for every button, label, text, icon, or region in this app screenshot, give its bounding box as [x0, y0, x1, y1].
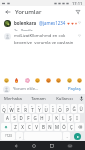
button[interactable]: Paylaş — [67, 85, 82, 93]
button[interactable]: 4 — [22, 104, 28, 113]
button[interactable]: Ü — [78, 104, 84, 113]
button[interactable]: Beğen — [77, 20, 82, 25]
staticText: P — [66, 107, 69, 113]
button[interactable]: I — [74, 114, 80, 122]
staticText: Tamam — [31, 96, 46, 102]
button[interactable]: M — [54, 123, 60, 131]
button[interactable]: V — [33, 123, 39, 131]
button[interactable]: Ğ — [71, 104, 77, 113]
button[interactable]: 1 — [1, 104, 7, 113]
button[interactable]: L — [60, 114, 66, 122]
staticText: U — [44, 107, 48, 113]
button[interactable]: mdLizatKlbmohmd en cok — [0, 31, 85, 44]
button[interactable]: Son uygulamalar — [47, 141, 56, 150]
button[interactable]: Beğen — [77, 33, 82, 38]
staticText: A — [6, 115, 9, 121]
button[interactable]: Emoji 4 — [34, 77, 40, 83]
button[interactable]: Emoji 6 — [55, 77, 61, 83]
button[interactable]: Ş — [67, 114, 73, 122]
staticText: Yorum ekle... — [13, 86, 39, 92]
staticText: I — [52, 107, 54, 113]
staticText: N — [48, 124, 52, 130]
button[interactable]: Geri — [3, 7, 12, 16]
staticText: 1 — [3, 104, 5, 107]
button[interactable]: Sil — [75, 123, 84, 131]
button[interactable]: B — [40, 123, 46, 131]
button[interactable]: Filtrele — [73, 7, 82, 16]
staticText: M — [55, 124, 59, 130]
button[interactable]: Ana ekran — [29, 141, 38, 150]
staticText: bolenkara — [14, 20, 37, 26]
button[interactable]: G — [32, 114, 38, 122]
button[interactable]: Z — [12, 123, 18, 131]
staticText: G — [33, 115, 37, 121]
button[interactable]: Yorum ekle... — [13, 86, 65, 92]
staticText: 6 — [38, 104, 40, 107]
button[interactable]: Emoji 1 — [3, 77, 9, 83]
button[interactable]: H — [39, 114, 45, 122]
staticText: V — [35, 124, 38, 130]
button[interactable]: F — [25, 114, 31, 122]
button[interactable]: S — [11, 114, 17, 122]
staticText: O — [58, 107, 62, 113]
button[interactable]: Kullanıcı — [51, 94, 77, 103]
staticText: L — [62, 115, 65, 121]
staticText: 2 — [10, 104, 12, 107]
button[interactable]: ?123 — [1, 132, 15, 140]
button[interactable]: Emoji 3 — [24, 77, 30, 83]
button[interactable]: 2 — [8, 104, 14, 113]
button[interactable]: 8 — [50, 104, 56, 113]
button[interactable]: D — [18, 114, 24, 122]
button[interactable]: 3 — [15, 104, 21, 113]
staticText: D — [19, 115, 23, 121]
button[interactable]: Gönder — [71, 132, 84, 140]
staticText: 8 — [52, 104, 54, 107]
button[interactable]: Ö — [61, 123, 67, 131]
button[interactable]: Emoji 8 — [76, 77, 82, 83]
staticText: Ş — [69, 115, 72, 121]
button[interactable]: 6 — [36, 104, 42, 113]
staticText: 7 — [45, 104, 47, 107]
staticText: 2s — [14, 28, 18, 31]
button[interactable]: N — [47, 123, 53, 131]
button[interactable]: , — [16, 132, 23, 140]
button[interactable]: . — [63, 132, 70, 140]
button[interactable]: 9 — [57, 104, 63, 113]
staticText: ?123 — [5, 134, 12, 138]
button[interactable]: Emoji 5 — [45, 77, 51, 83]
staticText: H — [40, 115, 44, 121]
button[interactable]: Büyük harf — [1, 123, 11, 131]
button[interactable]: Sesle yaz — [77, 94, 85, 103]
button[interactable]: 7 — [43, 104, 49, 113]
button[interactable]: J — [46, 114, 52, 122]
button[interactable]: bolenkara — [0, 17, 85, 31]
staticText: Y — [38, 107, 41, 113]
button[interactable]: 5 — [29, 104, 35, 113]
button[interactable]: Ç — [68, 123, 74, 131]
button[interactable]: Tamam — [25, 94, 51, 103]
button[interactable]: Merhaba — [0, 94, 25, 103]
button[interactable]: C — [26, 123, 32, 131]
button[interactable]: Emoji 2 — [13, 77, 19, 83]
staticText: Yorumlar — [15, 8, 42, 16]
staticText: Merhaba — [4, 96, 22, 102]
button[interactable]: A — [4, 114, 10, 122]
button[interactable]: Klavye — [65, 141, 74, 150]
staticText: 5 — [31, 104, 33, 107]
staticText: 3 — [17, 104, 19, 107]
button[interactable]: Geri — [11, 141, 20, 150]
staticText: Paylaş — [68, 86, 81, 92]
button[interactable]: Yanıtla — [21, 28, 33, 31]
button[interactable]: X — [19, 123, 25, 131]
staticText: 0 — [66, 104, 68, 107]
button[interactable]: K — [53, 114, 59, 122]
staticText: B — [42, 124, 45, 130]
staticText: F — [27, 115, 30, 121]
button[interactable]: 0 — [64, 104, 70, 113]
staticText: 17:11 — [72, 1, 83, 6]
staticText: mdLizatKlbmohmd en cok — [14, 33, 66, 39]
staticText: 9 — [59, 104, 61, 107]
staticText: J — [48, 115, 50, 121]
button[interactable]: Emoji 7 — [66, 77, 72, 83]
